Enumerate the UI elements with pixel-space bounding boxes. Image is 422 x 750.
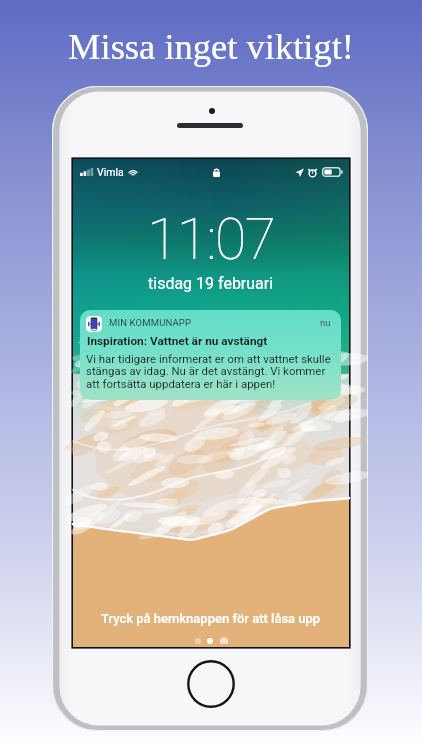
staticText: MIN KOMMUNAPP xyxy=(109,317,192,328)
staticText: 11:07 xyxy=(147,206,275,273)
staticText: nu xyxy=(320,317,331,328)
staticText: Vi har tidigare informerat er om att vat… xyxy=(86,352,331,391)
other: Camera xyxy=(220,637,228,644)
button[interactable]: MIN KOMMUNAPP xyxy=(80,310,341,400)
staticText: Vimla xyxy=(97,166,124,178)
staticText: Missa inget viktigt! xyxy=(0,26,422,66)
staticText: Tryck på hemknappen för att låsa upp xyxy=(101,611,321,626)
staticText: tisdag 19 februari xyxy=(148,274,274,293)
staticText: Inspiration: Vattnet är nu avstängt xyxy=(87,334,268,348)
